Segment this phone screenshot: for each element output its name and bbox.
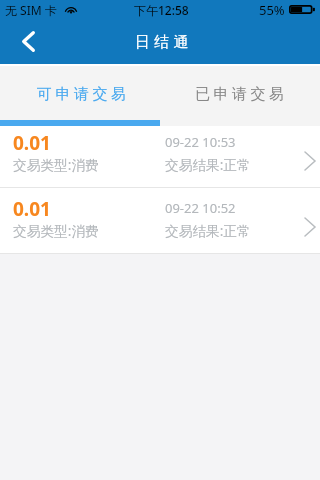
staticText: 55% <box>259 1 285 19</box>
button[interactable]: 已申请交易 <box>160 66 320 126</box>
staticText: 交易结果:正常 <box>165 221 251 240</box>
button[interactable]: Back <box>0 20 50 64</box>
staticText: 交易类型:消费 <box>13 155 99 174</box>
button[interactable]: 可申请交易 <box>0 66 160 126</box>
button[interactable]: 0.01 <box>0 122 320 188</box>
staticText: 0.01 <box>13 196 51 222</box>
staticText: 09-22 10:53 <box>165 133 236 151</box>
staticText: 日结通 <box>135 33 193 52</box>
staticText: 09-22 10:52 <box>165 199 236 217</box>
staticText: 已申请交易 <box>195 85 288 104</box>
staticText: 交易结果:正常 <box>165 155 251 174</box>
staticText: 0.01 <box>13 130 51 156</box>
staticText: 下午12:58 <box>134 2 189 18</box>
staticText: 无 SIM 卡 <box>5 2 57 18</box>
button[interactable]: 0.01 <box>0 188 320 254</box>
staticText: 交易类型:消费 <box>13 221 99 240</box>
staticText: 可申请交易 <box>37 85 130 104</box>
